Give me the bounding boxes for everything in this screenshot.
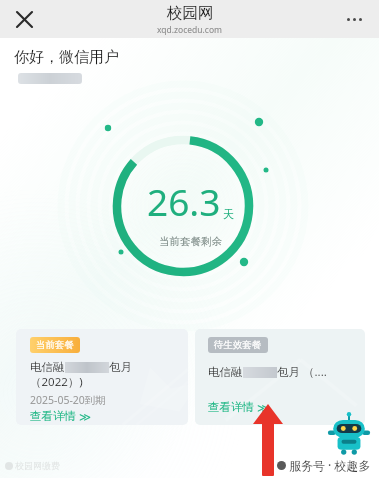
staticText: 查看详情 <box>208 400 254 414</box>
staticText: （2022）) <box>30 374 83 390</box>
staticText: 包月 （.... <box>277 364 327 380</box>
button[interactable]: Close <box>8 3 40 35</box>
staticText: 包月 <box>109 360 132 374</box>
button[interactable]: 待生效套餐 <box>195 329 365 425</box>
staticText: 电信融 <box>30 360 65 374</box>
button[interactable]: 当前套餐 <box>16 329 188 425</box>
staticText: 电信融 <box>208 365 243 379</box>
staticText: 服务号 · 校趣多 <box>289 457 371 473</box>
staticText: 26.3 <box>147 176 221 226</box>
staticText: 你好，微信用户 <box>14 48 119 67</box>
staticText: xqd.zocedu.com <box>157 24 223 36</box>
button[interactable]: 查看详情 <box>30 409 92 423</box>
staticText: 查看详情 <box>30 409 76 423</box>
staticText: ≫ <box>257 401 270 414</box>
staticText: 校园网缴费 <box>15 460 60 471</box>
staticText: 2025-05-20到期 <box>30 393 106 407</box>
staticText: 待生效套餐 <box>214 339 262 351</box>
staticText: 天 <box>223 207 234 221</box>
staticText: 校园网 <box>167 3 214 23</box>
staticText: ≫ <box>79 410 92 423</box>
staticText: 当前套餐 <box>36 339 74 351</box>
button[interactable]: 查看详情 <box>208 400 270 414</box>
button[interactable]: More options <box>339 4 369 34</box>
staticText: 当前套餐剩余 <box>159 235 222 248</box>
